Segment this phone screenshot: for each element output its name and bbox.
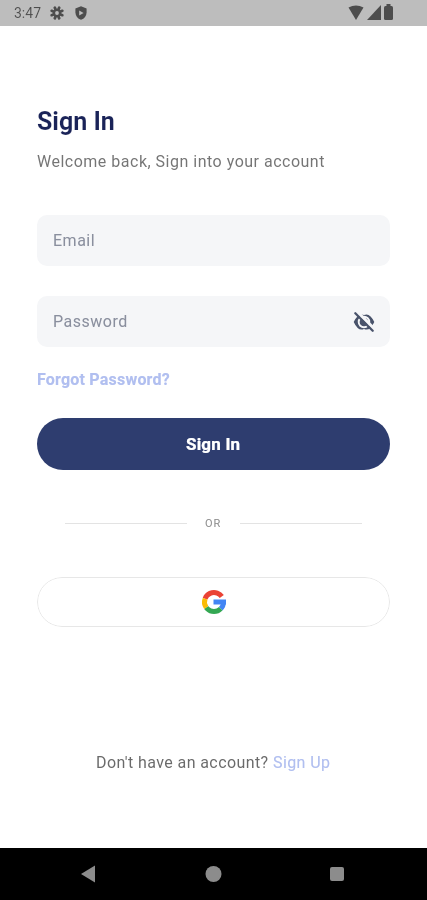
- button[interactable]: [350, 308, 378, 336]
- staticText: Password: [53, 312, 128, 331]
- button[interactable]: [0, 848, 143, 900]
- button[interactable]: [143, 848, 285, 900]
- staticText: Email: [53, 231, 96, 250]
- button[interactable]: Sign Up: [273, 753, 331, 772]
- staticText: Don't have an account?: [96, 753, 273, 772]
- staticText: Sign In: [37, 107, 115, 136]
- button[interactable]: Sign In: [37, 418, 390, 470]
- button[interactable]: Forgot Password?: [37, 369, 170, 389]
- button[interactable]: [37, 577, 390, 627]
- staticText: Sign Up: [273, 753, 331, 772]
- staticText: Sign In: [186, 434, 241, 454]
- button[interactable]: [285, 848, 427, 900]
- staticText: Forgot Password?: [37, 370, 170, 389]
- button[interactable]: Password: [37, 296, 390, 347]
- staticText: Welcome back, Sign into your account: [37, 152, 325, 171]
- button[interactable]: Email: [37, 215, 390, 266]
- staticText: OR: [205, 517, 222, 530]
- staticText: 3:47: [14, 5, 41, 21]
